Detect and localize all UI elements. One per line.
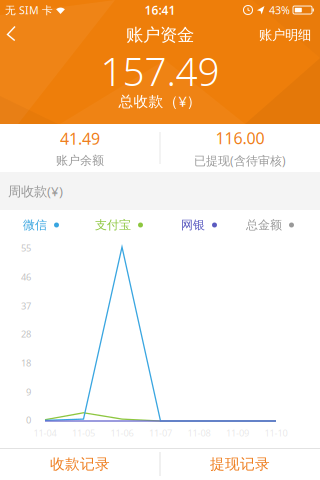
button[interactable]: 提现记录 xyxy=(160,448,320,480)
staticText: 9 xyxy=(26,386,31,398)
staticText: 账户余额 xyxy=(56,153,104,168)
button[interactable]: 支付宝 xyxy=(95,218,143,232)
staticText: 16:41 xyxy=(144,2,175,18)
staticText: 41.49 xyxy=(60,128,100,149)
staticText: 已提现(含待审核) xyxy=(194,153,286,169)
staticText: 账户资金 xyxy=(126,24,194,46)
staticText: 55 xyxy=(21,242,31,254)
staticText: 周收款(¥) xyxy=(8,182,63,200)
staticText: 11-06 xyxy=(110,427,133,439)
staticText: 116.00 xyxy=(215,127,264,149)
staticText: 无 SIM 卡 xyxy=(5,3,53,17)
staticText: 11-04 xyxy=(33,427,56,439)
staticText: 支付宝 xyxy=(95,218,131,232)
staticText: 157.49 xyxy=(100,45,219,97)
staticText: 46 xyxy=(21,271,31,283)
staticText: 11-08 xyxy=(187,427,210,439)
staticText: 18 xyxy=(21,357,31,369)
button[interactable]: 收款记录 xyxy=(0,448,160,480)
staticText: 28 xyxy=(21,328,31,340)
button[interactable]: 总金额 xyxy=(246,218,294,232)
button[interactable]: 网银 xyxy=(181,218,217,232)
staticText: 37 xyxy=(21,300,31,312)
staticText: 0 xyxy=(26,414,31,426)
staticText: 提现记录 xyxy=(210,455,270,473)
button[interactable]: 微信 xyxy=(23,218,59,232)
staticText: 总金额 xyxy=(246,218,282,232)
staticText: 总收款（¥） xyxy=(118,91,201,111)
staticText: 账户明细 xyxy=(259,27,311,43)
staticText: 网银 xyxy=(181,218,205,232)
staticText: 43% xyxy=(269,3,290,17)
staticText: 11-10 xyxy=(264,427,287,439)
staticText: 11-07 xyxy=(149,427,172,439)
button[interactable]: 账户明细 xyxy=(259,20,320,50)
staticText: 微信 xyxy=(23,218,47,232)
staticText: 11-05 xyxy=(72,427,95,439)
staticText: 11-09 xyxy=(226,427,249,439)
button[interactable]: 返回 xyxy=(0,20,22,47)
staticText: 收款记录 xyxy=(50,455,110,473)
